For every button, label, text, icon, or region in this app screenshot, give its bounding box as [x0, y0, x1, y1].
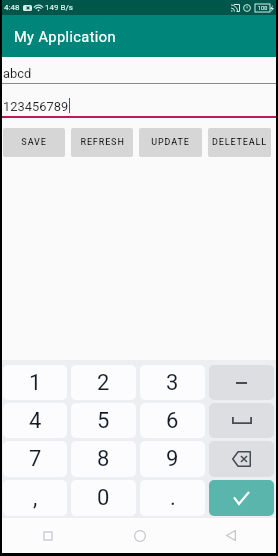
staticText: 100 [258, 5, 268, 11]
button[interactable]: Backspace [209, 441, 274, 477]
button[interactable]: 2 [71, 365, 136, 400]
staticText: 123456789 [3, 99, 69, 114]
button[interactable]: 3 [140, 365, 205, 400]
button[interactable]: 9 [140, 441, 205, 477]
button[interactable]: 1 [3, 365, 67, 400]
staticText: abcd [3, 66, 32, 81]
button[interactable]: Minus [209, 365, 274, 400]
button[interactable]: 6 [140, 403, 205, 438]
staticText: 1 [29, 370, 42, 396]
button[interactable]: 8 [71, 441, 136, 477]
button[interactable]: Back [185, 518, 276, 553]
button[interactable]: . [140, 480, 205, 516]
button[interactable]: 0 [71, 480, 136, 516]
button[interactable]: Home [94, 518, 185, 553]
staticText: 8 [97, 446, 110, 472]
staticText: 6 [166, 408, 179, 434]
button[interactable]: 4 [3, 403, 67, 438]
button[interactable]: Recents [2, 518, 94, 553]
button[interactable]: 7 [3, 441, 67, 477]
button[interactable]: SAVE [3, 128, 65, 157]
staticText: . [170, 485, 176, 511]
button[interactable]: DELETEALL [208, 128, 271, 157]
button[interactable]: REFRESH [71, 128, 133, 157]
button[interactable]: Space [209, 403, 274, 438]
staticText: SAVE [21, 137, 47, 148]
staticText: 149 B/s [45, 3, 73, 12]
staticText: REFRESH [80, 137, 125, 148]
staticText: , [33, 485, 38, 511]
staticText: DELETEALL [212, 137, 267, 148]
staticText: UPDATE [151, 137, 190, 148]
staticText: 5 [97, 408, 110, 434]
staticText: 3 [166, 370, 179, 396]
staticText: 7 [29, 446, 42, 472]
staticText: 2 [97, 370, 110, 396]
staticText: 4:48 [4, 3, 20, 12]
button[interactable]: UPDATE [139, 128, 202, 157]
button[interactable]: , [3, 480, 67, 516]
staticText: My Application [14, 28, 116, 45]
staticText: 4 [29, 408, 42, 434]
staticText: 9 [166, 446, 179, 472]
staticText: 0 [97, 485, 110, 511]
button[interactable]: Enter [209, 480, 274, 516]
button[interactable]: 5 [71, 403, 136, 438]
